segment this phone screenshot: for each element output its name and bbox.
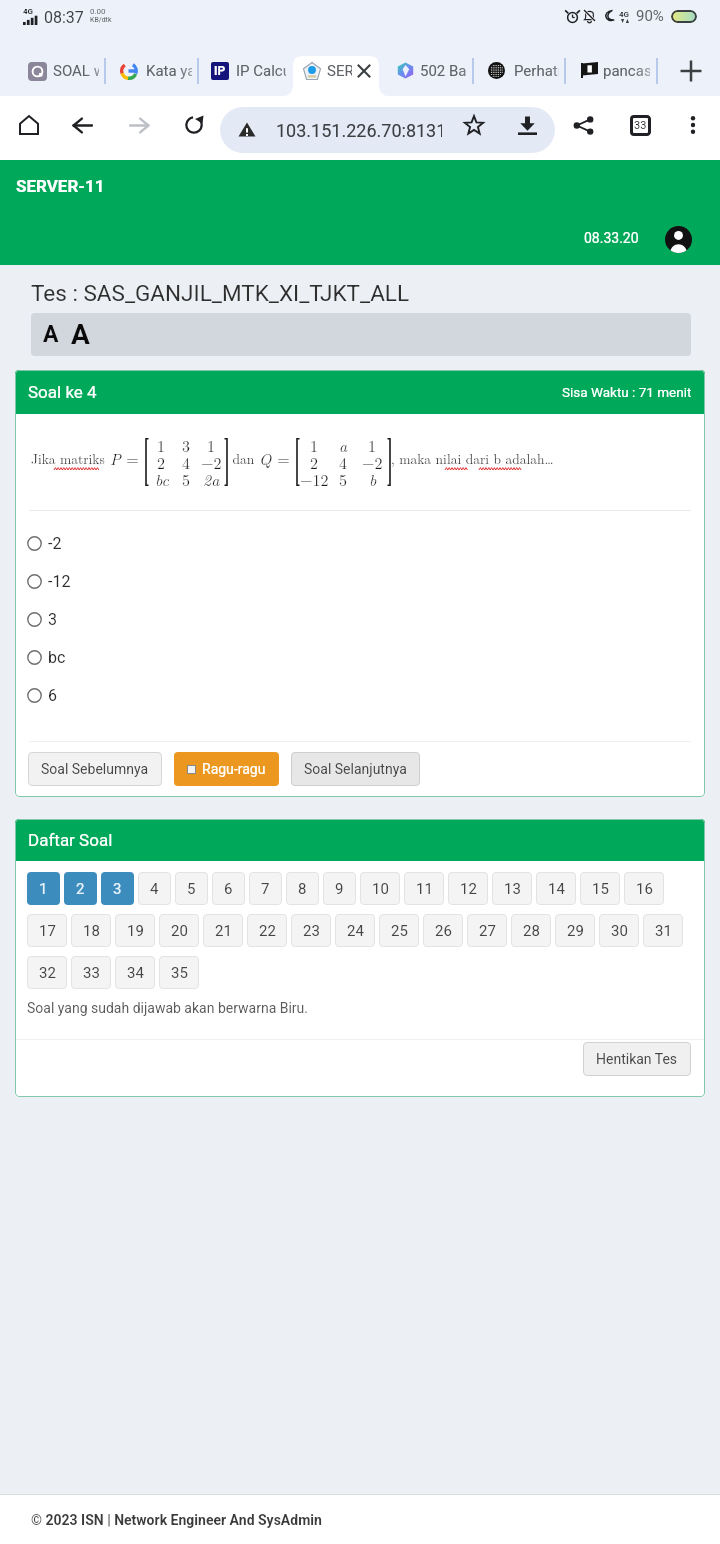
button[interactable]: 17	[27, 914, 67, 947]
button[interactable]: A	[67, 315, 94, 354]
staticText: 2	[76, 880, 85, 898]
button[interactable]: Soal Selanjutnya	[291, 752, 420, 786]
staticText: P	[110, 447, 121, 470]
button[interactable]	[120, 51, 192, 91]
staticText: -2	[48, 534, 62, 553]
staticText: 20	[171, 922, 188, 940]
staticText: 08.33.20	[584, 230, 639, 246]
staticText: KB/dtk	[90, 16, 112, 24]
button[interactable]: 25	[379, 914, 419, 947]
button[interactable]: More options	[676, 108, 710, 142]
button[interactable]: Share	[566, 108, 600, 142]
staticText: 21	[215, 922, 232, 940]
button[interactable]: A	[39, 318, 63, 351]
button[interactable]: 31	[643, 914, 683, 947]
button[interactable]: Hentikan Tes	[583, 1042, 691, 1076]
button[interactable]: New tab	[673, 53, 709, 89]
button[interactable]: Back	[65, 108, 99, 142]
button[interactable]: 13	[492, 872, 532, 905]
button[interactable]	[397, 51, 466, 91]
button[interactable]: 11	[404, 872, 444, 905]
staticText: 103.151.226.70:8131//test	[276, 120, 442, 141]
button[interactable]: 27	[467, 914, 507, 947]
button[interactable]: 34	[115, 956, 155, 989]
button[interactable]: bc	[15, 644, 705, 670]
staticText: 4	[182, 451, 191, 473]
staticText: 11	[416, 880, 433, 898]
button[interactable]: 19	[115, 914, 155, 947]
staticText: , maka nilai dari b adalah…	[391, 449, 554, 468]
staticText: 28	[523, 922, 540, 940]
staticText: 6	[224, 880, 233, 898]
staticText: Daftar Soal	[28, 830, 113, 850]
button[interactable]: 12	[448, 872, 488, 905]
staticText: 35	[171, 964, 188, 982]
button[interactable]: 3	[101, 872, 134, 905]
button[interactable]: 5	[175, 872, 208, 905]
button[interactable]: 6	[15, 682, 705, 708]
button[interactable]: 7	[249, 872, 282, 905]
button[interactable]: Account	[665, 226, 692, 253]
button[interactable]: Reload	[177, 108, 211, 142]
button[interactable]: 30	[599, 914, 639, 947]
staticText: 10	[372, 880, 389, 898]
button[interactable]: 29	[555, 914, 595, 947]
button[interactable]: 32	[27, 956, 67, 989]
button[interactable]: 16	[624, 872, 664, 905]
button[interactable]: 6	[212, 872, 245, 905]
button[interactable]: Forward	[122, 108, 156, 142]
button[interactable]: 18	[71, 914, 111, 947]
staticText: 19	[127, 922, 144, 940]
button[interactable]: 28	[511, 914, 551, 947]
staticText: 5	[339, 468, 348, 490]
staticText: 17	[39, 922, 56, 940]
button[interactable]: 24	[335, 914, 375, 947]
button[interactable]: 3	[15, 606, 705, 632]
button[interactable]: 22	[247, 914, 287, 947]
staticText: 4G	[619, 10, 630, 19]
button[interactable]: Tabs	[623, 108, 657, 142]
staticText: Tes : SAS_GANJIL_MTK_XI_TJKT_ALL	[31, 280, 410, 306]
staticText: 29	[567, 922, 584, 940]
button[interactable]	[211, 51, 286, 91]
staticText: 3	[113, 880, 122, 898]
button[interactable]: 4	[138, 872, 171, 905]
button[interactable]: 33	[71, 956, 111, 989]
staticText: 4G	[23, 7, 34, 16]
button[interactable]: 103.151.226.70:8131//test	[220, 107, 555, 153]
button[interactable]: Ragu-ragu	[174, 752, 279, 786]
button[interactable]: -12	[15, 568, 705, 594]
button[interactable]: 2	[64, 872, 97, 905]
button[interactable]: Home	[12, 108, 46, 142]
button[interactable]: Download	[510, 108, 544, 142]
button[interactable]	[581, 51, 650, 91]
button[interactable]: 35	[159, 956, 199, 989]
button[interactable]: 26	[423, 914, 463, 947]
button[interactable]: 15	[580, 872, 620, 905]
button[interactable]: Soal Sebelumnya	[28, 752, 162, 786]
button[interactable]	[488, 51, 559, 91]
button[interactable]: 14	[536, 872, 576, 905]
staticText: −2	[201, 451, 222, 473]
button[interactable]: Bookmark	[457, 108, 491, 142]
button[interactable]: 21	[203, 914, 243, 947]
button[interactable]: 10	[360, 872, 400, 905]
staticText: 1	[310, 434, 319, 456]
staticText: Perhatikan	[514, 62, 559, 80]
staticText: 27	[479, 922, 496, 940]
staticText: 25	[391, 922, 408, 940]
staticText: 90%	[636, 7, 664, 25]
button[interactable]: 9	[323, 872, 356, 905]
button[interactable]: 8	[286, 872, 319, 905]
button[interactable]: -2	[15, 530, 705, 556]
staticText: 30	[611, 922, 628, 940]
button[interactable]: Close tab	[354, 61, 374, 81]
staticText: =	[272, 447, 296, 470]
staticText: Soal ke 4	[28, 382, 97, 402]
button[interactable]	[28, 51, 99, 91]
staticText: 32	[39, 964, 56, 982]
button[interactable]: 23	[291, 914, 331, 947]
staticText: Soal Selanjutnya	[304, 761, 407, 777]
button[interactable]: 1	[27, 872, 60, 905]
button[interactable]: 20	[159, 914, 199, 947]
